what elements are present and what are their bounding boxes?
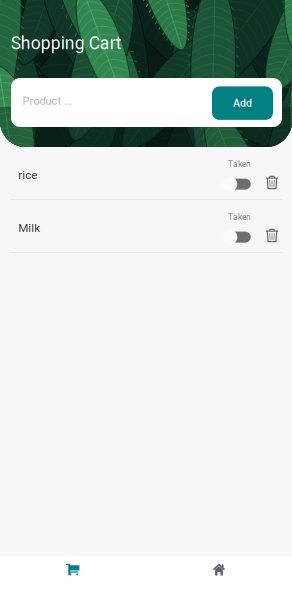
staticText: Add (233, 97, 252, 109)
staticText: rice (18, 168, 37, 182)
staticText: Product … (22, 95, 71, 108)
button[interactable]: Taken (222, 147, 258, 187)
staticText: Shopping Cart (11, 33, 122, 53)
button[interactable]: Delete rice (257, 162, 287, 202)
staticText: Taken (228, 212, 251, 222)
staticText: Taken (228, 159, 251, 169)
button[interactable]: Delete Milk (257, 215, 287, 255)
staticText: Milk (18, 221, 40, 235)
button[interactable]: Add (212, 86, 273, 120)
button[interactable]: Cart (0, 557, 146, 592)
button[interactable]: Taken (222, 200, 258, 240)
button[interactable]: Home (146, 557, 292, 592)
